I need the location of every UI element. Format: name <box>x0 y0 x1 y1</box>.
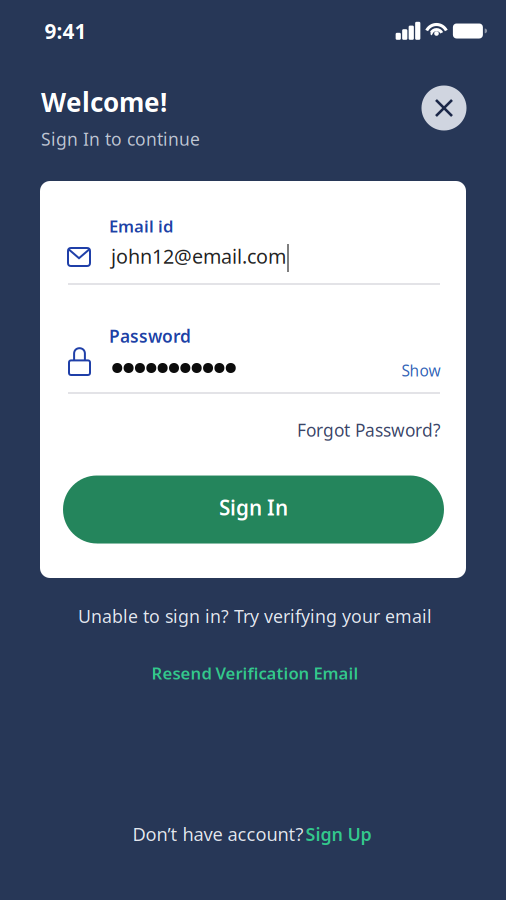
button[interactable]: Show <box>384 357 440 383</box>
button[interactable]: Resend Verification Email <box>151 659 358 687</box>
button[interactable]: Forgot Password? <box>271 416 441 444</box>
staticText: Sign In <box>219 493 288 521</box>
staticText: 9:41 <box>44 17 86 45</box>
button[interactable]: Don’t have account? <box>132 819 371 849</box>
button[interactable]: Sign In <box>63 475 444 543</box>
staticText: Password <box>109 324 191 348</box>
staticText: Welcome! <box>41 84 167 120</box>
staticText: Forgot Password? <box>297 418 441 442</box>
staticText: Don’t have account? <box>132 822 303 846</box>
staticText: Sign In to continue <box>41 127 200 151</box>
staticText: Unable to sign in? Try verifying your em… <box>78 604 432 628</box>
staticText: Email id <box>109 215 173 237</box>
staticText: Show <box>401 360 440 381</box>
staticText: Resend Verification Email <box>151 662 358 684</box>
button[interactable]: Close <box>421 85 466 130</box>
staticText: Sign Up <box>305 822 371 846</box>
staticText: john12@email.com <box>111 243 286 269</box>
